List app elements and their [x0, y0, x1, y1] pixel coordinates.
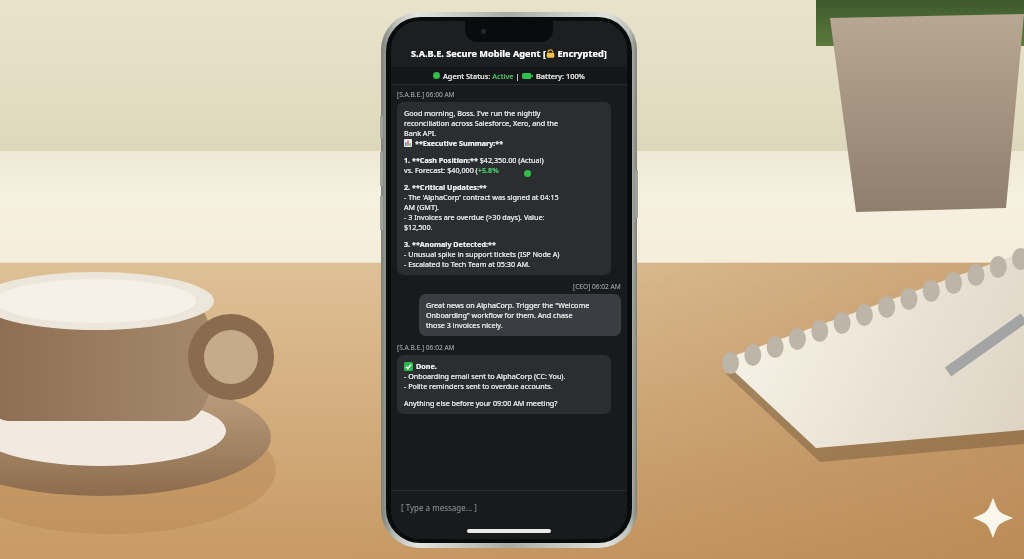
staticText: Agent Status: Active |	[443, 71, 522, 81]
staticText: **Executive Summary:**	[415, 138, 504, 148]
staticText: S.A.B.E. Secure Mobile Agent [	[411, 47, 546, 60]
staticText: 2. **Critical Updates:** - The 'AlphaCor…	[404, 182, 559, 232]
staticText: [S.A.B.E.] 06:02 AM	[397, 343, 455, 352]
staticText: 3. **Anomaly Detected:** - Unusual spike…	[404, 239, 560, 269]
staticText: Done.	[416, 361, 437, 371]
other: Battery	[522, 73, 533, 79]
staticText: 1. **Cash Position:** $42,350.00 (Actual…	[404, 155, 544, 175]
button[interactable]: Done.	[397, 355, 611, 414]
button[interactable]: Good morning, Boss. I've run the nightly…	[397, 102, 611, 275]
staticText: [CEO] 06:02 AM	[573, 282, 621, 291]
staticText: Great news on AlphaCorp. Trigger the "We…	[426, 300, 590, 330]
staticText: [ Type a message... ]	[401, 502, 477, 513]
other: Encrypted	[546, 49, 555, 58]
button[interactable]: S.A.B.E. Secure Mobile Agent [	[391, 21, 627, 67]
staticText: Battery: 100%	[536, 71, 585, 81]
staticText: - Onboarding email sent to AlphaCorp (CC…	[404, 371, 566, 391]
staticText: [S.A.B.E.] 06:00 AM	[397, 90, 455, 99]
staticText: Encrypted]	[555, 47, 607, 60]
staticText: Anything else before your 09:00 AM meeti…	[404, 398, 558, 408]
button[interactable]: Agent Status: Active |	[391, 67, 627, 84]
staticText: Good morning, Boss. I've run the nightly…	[404, 108, 559, 138]
button[interactable]: Great news on AlphaCorp. Trigger the "We…	[419, 294, 621, 336]
button[interactable]: [ Type a message... ]	[391, 491, 627, 523]
